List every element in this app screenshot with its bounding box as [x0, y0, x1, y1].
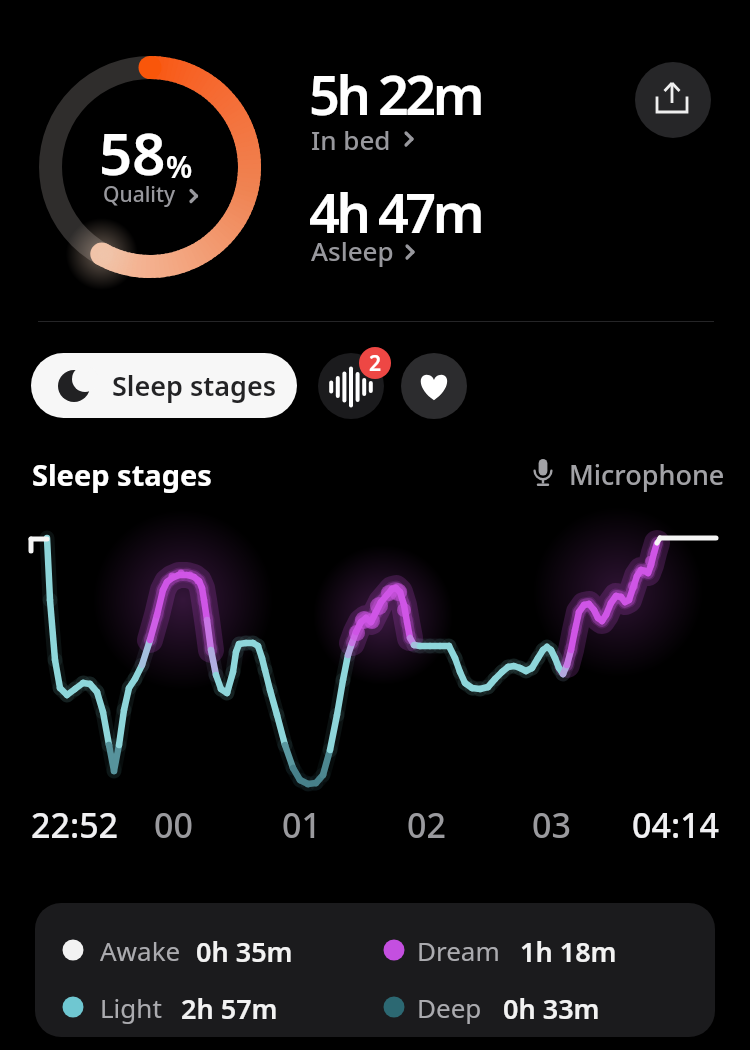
- button[interactable]: [635, 62, 711, 138]
- staticText: 0h 35m: [196, 933, 293, 970]
- button[interactable]: [401, 353, 467, 419]
- staticText: 2: [369, 349, 382, 378]
- staticText: 22:52: [31, 802, 119, 848]
- staticText: 58: [99, 113, 166, 192]
- staticText: 4h 47m: [309, 175, 481, 249]
- staticText: 1h 18m: [520, 933, 617, 970]
- staticText: Microphone: [569, 456, 725, 493]
- staticText: 0h 33m: [503, 990, 600, 1027]
- staticText: In bed: [311, 122, 391, 157]
- staticText: Dream: [417, 933, 500, 968]
- staticText: Deep: [417, 990, 482, 1025]
- staticText: 03: [532, 802, 571, 848]
- staticText: Sleep stages: [32, 455, 212, 494]
- staticText: 04:14: [632, 802, 720, 848]
- staticText: %: [166, 146, 193, 187]
- staticText: Light: [100, 990, 162, 1025]
- staticText: 02: [407, 802, 446, 848]
- button[interactable]: Sleep stages: [31, 353, 297, 418]
- staticText: Sleep stages: [112, 367, 277, 404]
- staticText: Quality: [103, 180, 176, 209]
- staticText: Awake: [100, 933, 181, 968]
- staticText: 01: [282, 802, 321, 848]
- staticText: 5h 22m: [309, 57, 481, 131]
- button[interactable]: [318, 353, 384, 419]
- staticText: Asleep: [311, 233, 394, 268]
- staticText: 2h 57m: [181, 990, 278, 1027]
- button[interactable]: Awake: [35, 903, 715, 1037]
- staticText: 00: [154, 802, 193, 848]
